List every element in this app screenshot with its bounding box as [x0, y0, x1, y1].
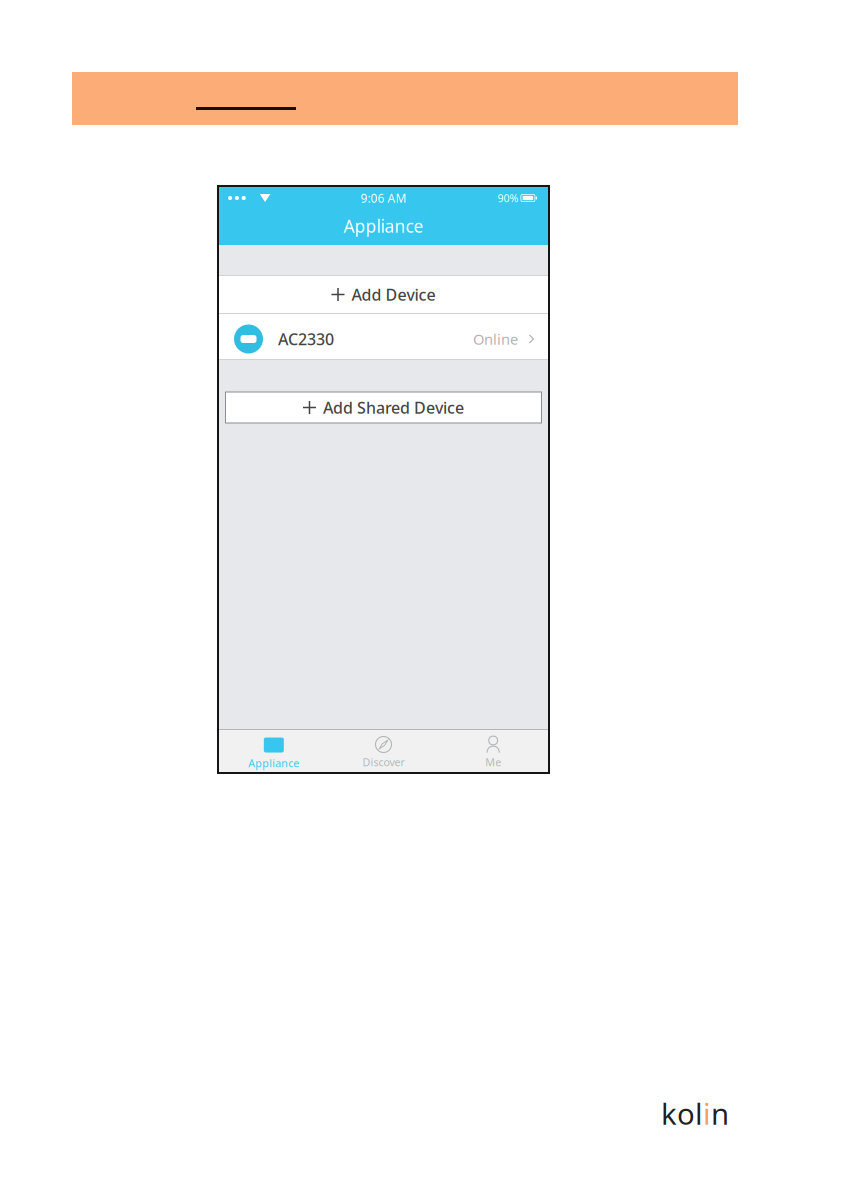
- staticText: 90%: [497, 191, 518, 205]
- staticText: kol: [661, 1094, 703, 1133]
- staticText: n: [711, 1094, 729, 1133]
- staticText: Online: [473, 329, 518, 349]
- staticText: 9:06 AM: [360, 190, 406, 206]
- staticText: Appliance: [343, 214, 423, 237]
- button[interactable]: Discover: [329, 730, 438, 772]
- button[interactable]: AC2330: [219, 314, 548, 359]
- button[interactable]: Add Shared Device: [225, 392, 541, 423]
- staticText: AC2330: [278, 328, 334, 350]
- button[interactable]: Me: [438, 730, 548, 772]
- staticText: Add Shared Device: [323, 397, 464, 418]
- staticText: Discover: [362, 755, 404, 769]
- button[interactable]: Add Device: [219, 276, 548, 313]
- staticText: Me: [485, 755, 501, 769]
- staticText: Add Device: [351, 284, 435, 305]
- staticText: Appliance: [248, 756, 299, 770]
- button[interactable]: Appliance: [219, 730, 329, 772]
- staticText: i: [703, 1094, 711, 1133]
